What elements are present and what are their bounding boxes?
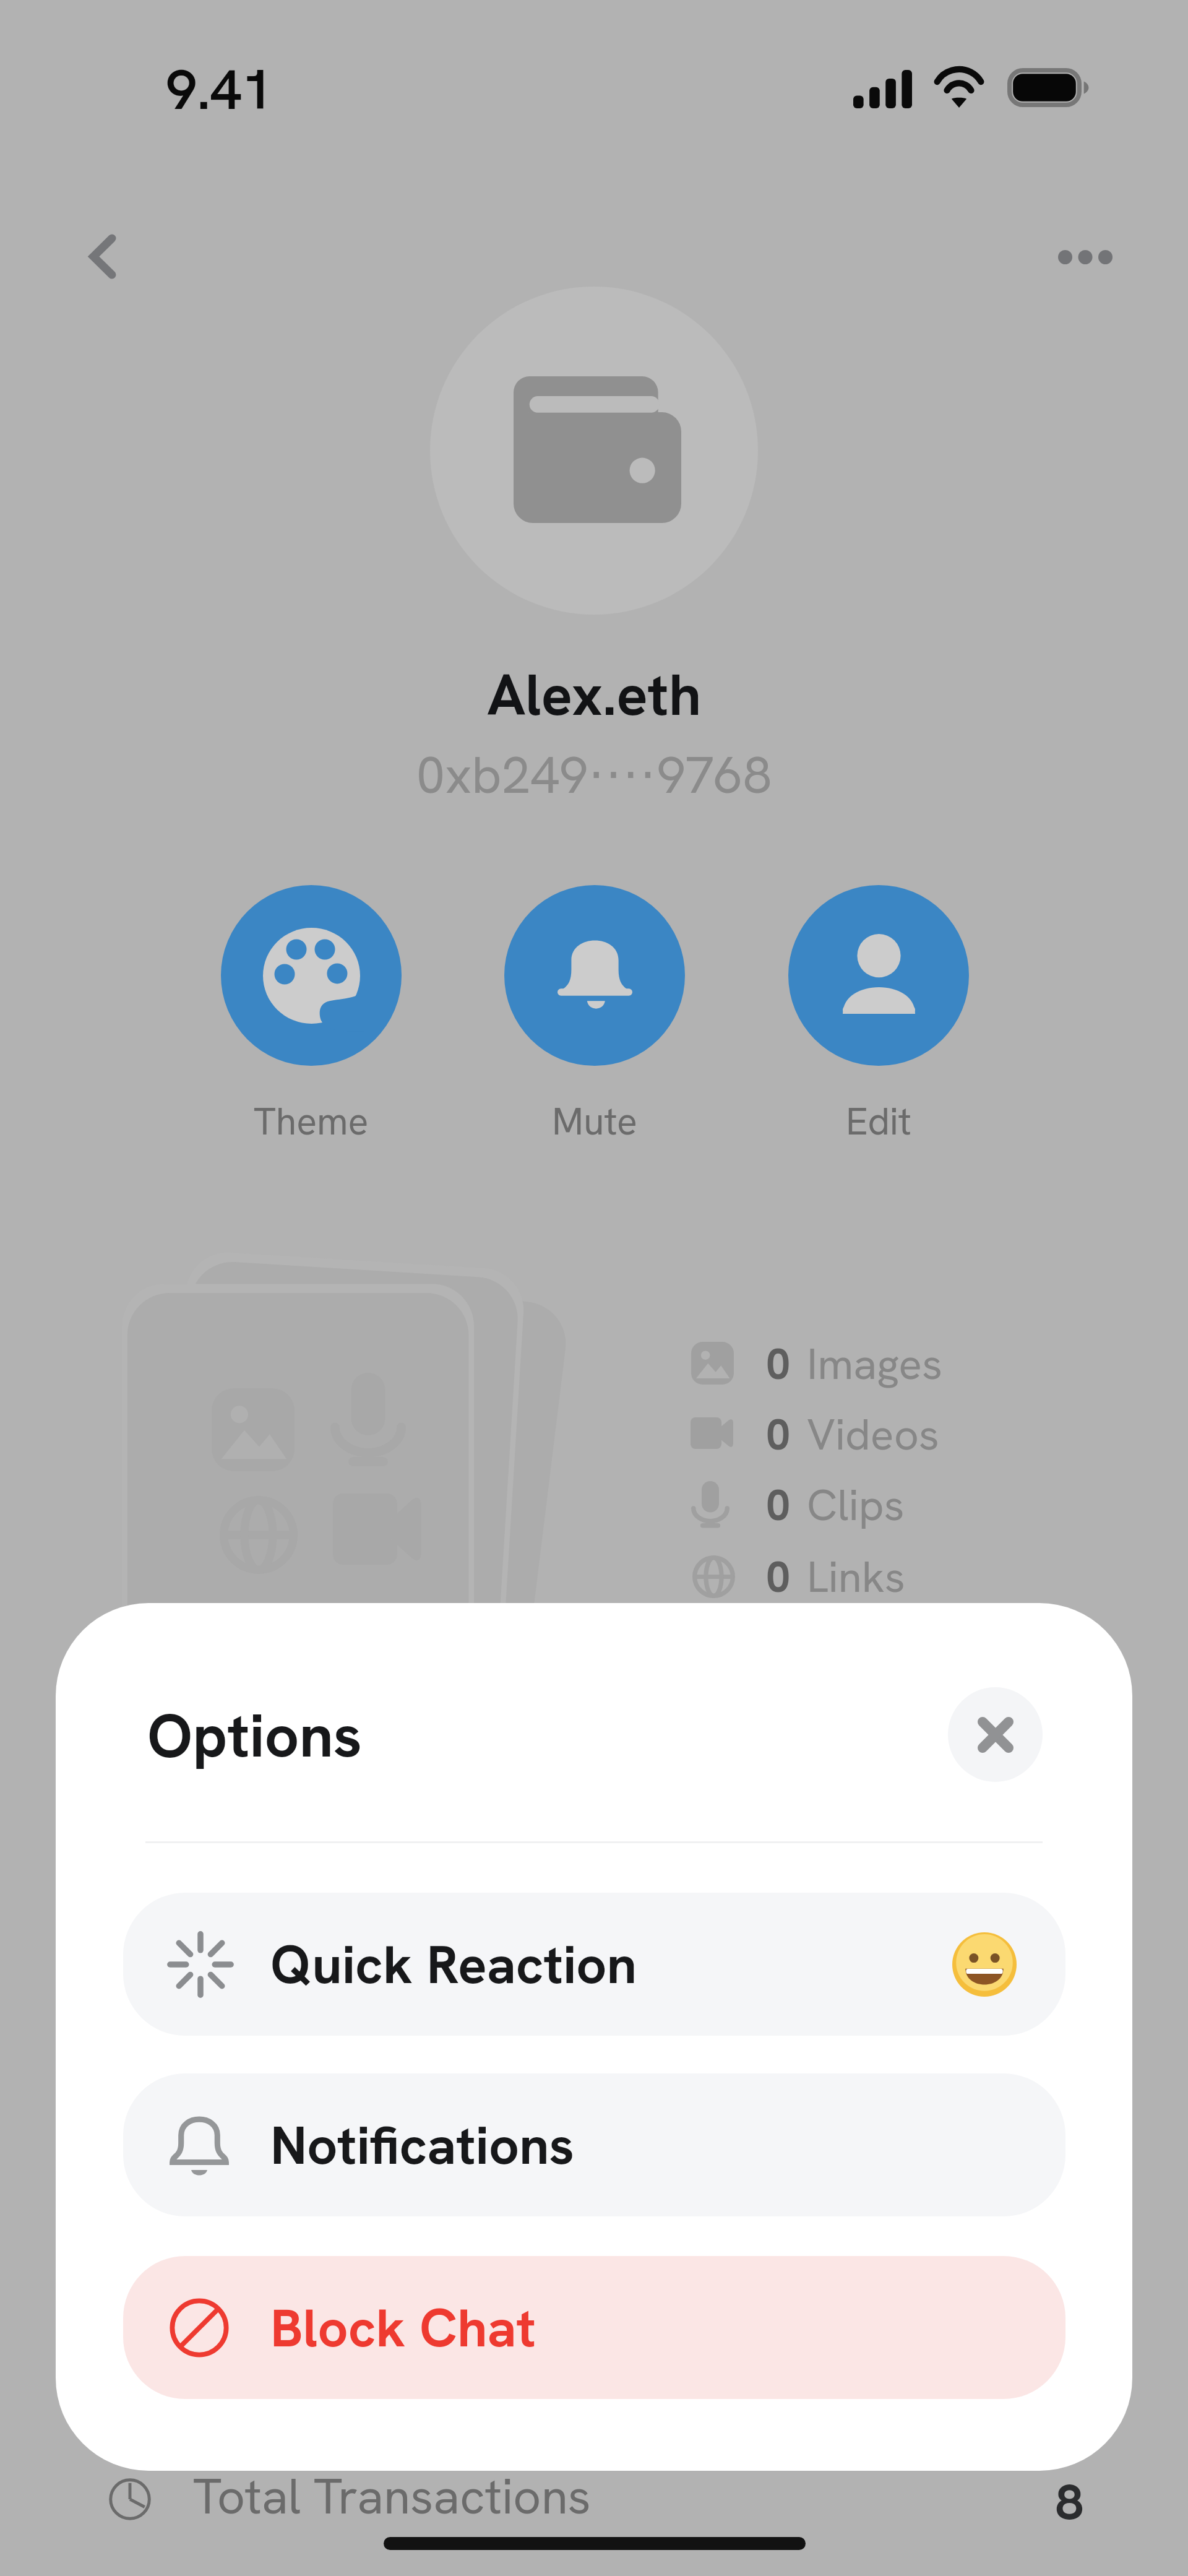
staticText: Mute [552,1097,637,1146]
staticText: 8 [1056,2470,1083,2534]
staticText: Links [807,1549,905,1605]
button[interactable]: Mute [504,885,685,1146]
staticText: 0 [766,1406,791,1463]
staticText: Videos [807,1406,939,1463]
staticText: Quick Reaction [270,1930,637,1999]
staticText: Total Transactions [193,2465,591,2528]
staticText: Images [807,1336,943,1392]
staticText: Notifications [270,2111,575,2180]
button[interactable]: Block Chat [123,2256,1065,2399]
staticText: 9.41 [166,53,273,126]
button[interactable]: More options [1048,220,1122,294]
staticText: Block Chat [270,2293,536,2362]
staticText: Edit [846,1097,911,1146]
button[interactable]: Close [948,1687,1043,1782]
button[interactable]: Edit [788,885,969,1146]
staticText: 0xb249····9768 [0,741,1188,808]
staticText: 0 [766,1549,791,1605]
button[interactable]: Notifications [123,2073,1065,2216]
staticText: 0 [766,1336,791,1392]
staticText: Theme [254,1097,369,1146]
staticText: Options [147,1696,363,1775]
staticText: 0 [766,1477,791,1533]
button[interactable]: Theme [221,885,402,1146]
staticText: Alex.eth [0,657,1188,732]
staticText: Clips [807,1477,905,1533]
button[interactable]: Back [66,219,140,293]
button[interactable]: Quick Reaction [123,1893,1065,2036]
